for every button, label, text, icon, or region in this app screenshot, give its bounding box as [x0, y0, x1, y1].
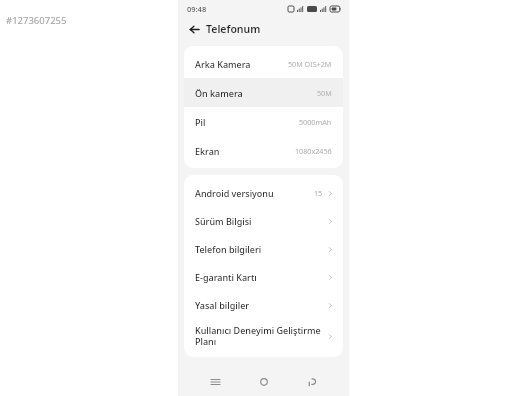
button[interactable]: Arka Kamera: [184, 49, 343, 78]
button[interactable]: E-garanti Kartı: [184, 263, 343, 291]
staticText: 15: [314, 188, 323, 198]
button[interactable]: Sürüm Bilgisi: [184, 207, 343, 235]
button[interactable]: Ekran: [184, 136, 343, 165]
button[interactable]: Ön kamera: [184, 78, 343, 107]
button[interactable]: Back: [186, 21, 202, 37]
staticText: 1080x2456: [295, 146, 332, 156]
staticText: E-garanti Kartı: [195, 271, 257, 283]
staticText: Kullanıcı Deneyimi Geliştirme Planı: [195, 324, 327, 348]
button[interactable]: Kullanıcı Deneyimi Geliştirme Planı: [184, 319, 343, 353]
staticText: Ön kamera: [195, 87, 243, 99]
staticText: Pil: [195, 116, 206, 128]
staticText: Ekran: [195, 145, 220, 157]
staticText: 50M: [317, 88, 332, 98]
staticText: Yasal bilgiler: [195, 299, 250, 311]
button[interactable]: Back: [301, 371, 323, 393]
staticText: Android versiyonu: [195, 187, 274, 199]
staticText: #1273607255: [6, 14, 67, 27]
button[interactable]: Telefon bilgileri: [184, 235, 343, 263]
button[interactable]: Android versiyonu: [184, 179, 343, 207]
staticText: Telefonum: [206, 22, 261, 36]
button[interactable]: Recent apps: [204, 371, 226, 393]
button[interactable]: Yasal bilgiler: [184, 291, 343, 319]
staticText: Arka Kamera: [195, 58, 251, 70]
staticText: 09:48: [187, 4, 207, 14]
staticText: Sürüm Bilgisi: [195, 215, 252, 227]
staticText: 5000mAh: [299, 117, 332, 127]
staticText: 50M OIS+2M: [288, 59, 332, 69]
button[interactable]: Home: [253, 371, 275, 393]
button[interactable]: Pil: [184, 107, 343, 136]
staticText: Telefon bilgileri: [195, 243, 262, 255]
